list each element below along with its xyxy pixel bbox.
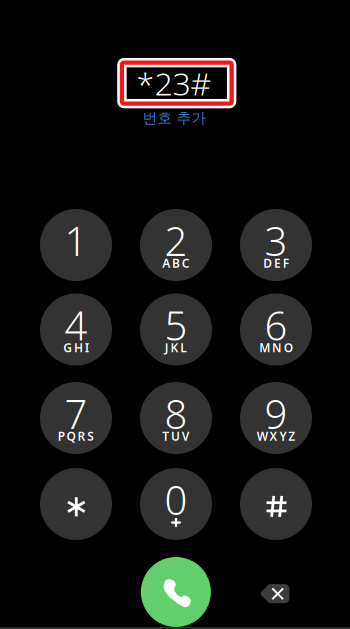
staticText: V (182, 428, 190, 444)
button[interactable]: Call (141, 557, 211, 627)
staticText: 3 (264, 214, 287, 267)
button[interactable]: 6 (240, 293, 312, 365)
staticText: W (257, 428, 268, 444)
staticText: 6 (264, 298, 287, 351)
staticText: H (74, 339, 83, 355)
staticText: *23# (136, 62, 211, 104)
staticText: U (171, 428, 180, 444)
staticText: 8 (164, 387, 187, 440)
staticText: E (274, 255, 281, 271)
staticText: S (87, 428, 94, 444)
staticText: F (283, 255, 289, 271)
button[interactable]: 3 (240, 209, 312, 281)
button[interactable]: 7 (40, 382, 112, 454)
button[interactable] (240, 468, 312, 540)
staticText: Y (279, 428, 286, 444)
staticText: O (284, 339, 293, 355)
staticText: L (180, 339, 187, 355)
staticText: R (77, 428, 85, 444)
staticText: 2 (164, 214, 187, 267)
button[interactable] (40, 468, 112, 540)
button[interactable]: 2 (140, 209, 212, 281)
button[interactable]: 9 (240, 382, 312, 454)
staticText: B (172, 255, 180, 271)
staticText: 1 (64, 214, 87, 267)
staticText: 번호 추가 (142, 109, 206, 127)
button[interactable]: 5 (140, 293, 212, 365)
staticText: J (165, 339, 169, 355)
staticText: N (272, 339, 282, 355)
staticText: X (270, 428, 278, 444)
staticText: G (63, 339, 72, 355)
staticText: T (162, 428, 169, 444)
staticText: Q (67, 428, 76, 444)
button[interactable]: 4 (40, 293, 112, 365)
button[interactable]: 1 (40, 209, 112, 281)
staticText: K (170, 339, 178, 355)
staticText: A (162, 255, 170, 271)
staticText: 5 (164, 298, 187, 351)
staticText: Z (288, 428, 295, 444)
staticText: I (85, 339, 89, 355)
button[interactable]: 8 (140, 382, 212, 454)
staticText: 7 (64, 387, 87, 440)
staticText: 4 (64, 298, 87, 351)
staticText: M (259, 339, 270, 355)
button[interactable]: 번호 추가 (142, 109, 206, 127)
button[interactable]: Delete (260, 584, 289, 603)
staticText: D (263, 255, 272, 271)
staticText: 9 (264, 387, 287, 440)
staticText: C (182, 255, 190, 271)
button[interactable]: 0 (140, 468, 212, 540)
staticText: P (58, 428, 65, 444)
staticText: 0 (164, 473, 187, 526)
